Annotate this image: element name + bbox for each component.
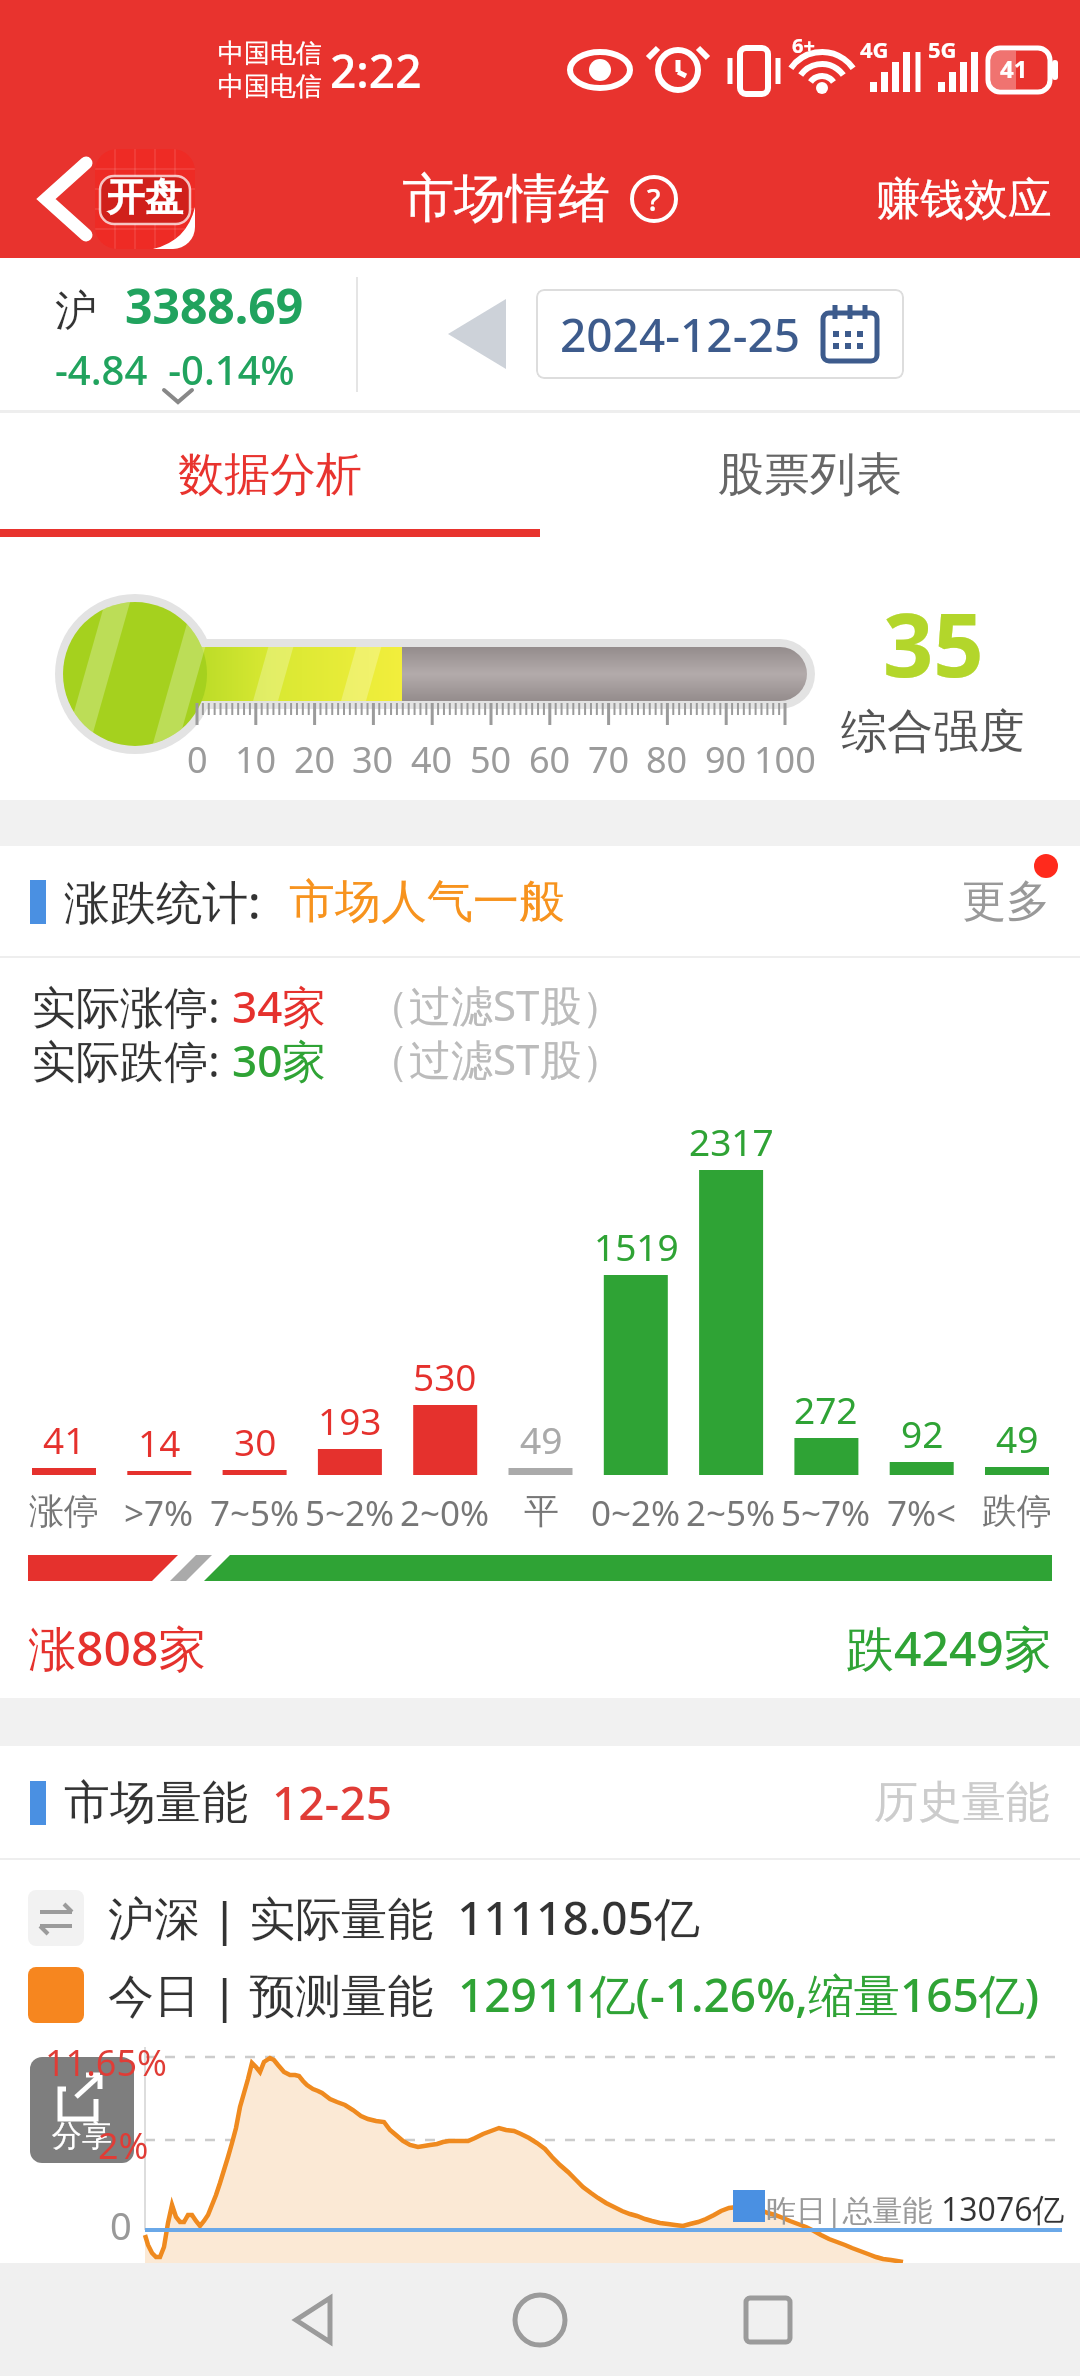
staticText: 34家 xyxy=(232,976,327,1030)
staticText: 平 xyxy=(524,1489,559,1533)
staticText: 实际跌停: xyxy=(32,1030,232,1084)
staticText: 35 xyxy=(883,583,984,703)
button[interactable] xyxy=(708,2280,828,2360)
button[interactable] xyxy=(252,2280,372,2360)
staticText: 沪深 | 实际量能 11118.05亿 xyxy=(108,1886,700,1949)
button[interactable]: 开盘 xyxy=(95,149,195,249)
staticText: （过滤ST股） xyxy=(367,976,624,1030)
staticText: 赚钱效应 xyxy=(876,172,1052,227)
staticText: 中国电信 xyxy=(218,37,322,70)
staticText: 跌停 xyxy=(982,1489,1052,1533)
staticText: 历史量能 xyxy=(874,1775,1050,1830)
staticText: -4.84 -0.14% xyxy=(55,342,295,396)
button[interactable] xyxy=(480,2280,600,2360)
staticText: 5G xyxy=(928,34,957,64)
staticText: 数据分析 xyxy=(178,446,362,504)
staticText: 5~7% xyxy=(781,1489,871,1537)
staticText: 1519 xyxy=(594,1221,679,1271)
button[interactable]: 股票列表 xyxy=(540,413,1080,537)
staticText: 实际涨停: xyxy=(32,976,232,1030)
button[interactable]: 赚钱效应 xyxy=(876,172,1052,227)
staticText: 12-25 xyxy=(272,1771,393,1834)
button[interactable]: 分享 xyxy=(30,2057,134,2163)
staticText: 股票列表 xyxy=(718,446,902,504)
button[interactable] xyxy=(448,299,506,369)
staticText: 市场情绪 xyxy=(402,166,610,232)
staticText: 2317 xyxy=(689,1116,774,1166)
staticText: 30 xyxy=(234,1416,277,1466)
staticText: 14 xyxy=(138,1417,181,1467)
staticText: 0 xyxy=(110,2199,132,2251)
staticText: （过滤ST股） xyxy=(367,1030,624,1084)
staticText: 综合强度 xyxy=(841,703,1025,761)
staticText: 今日 | 预测量能 xyxy=(108,1963,458,2026)
staticText: 11.65% xyxy=(45,2038,167,2087)
staticText: 100 xyxy=(754,735,816,784)
staticText: 涨停 xyxy=(29,1489,99,1533)
staticText: 更多 xyxy=(962,874,1050,929)
staticText: 30家 xyxy=(232,1030,327,1084)
staticText: 80 xyxy=(646,735,688,784)
staticText: 41 xyxy=(43,1414,86,1464)
button[interactable] xyxy=(34,157,98,241)
staticText: 昨日|总量能 xyxy=(766,2189,941,2230)
staticText: 2% xyxy=(98,2121,149,2170)
staticText: 沪 xyxy=(55,285,97,338)
staticText: 5~2% xyxy=(305,1489,395,1537)
staticText: 涨808家 xyxy=(28,1615,207,1681)
staticText: 3388.69 xyxy=(125,273,304,338)
staticText: 30 xyxy=(352,735,394,784)
staticText: 市场人气一般 xyxy=(289,873,565,931)
staticText: 7~5% xyxy=(210,1489,300,1537)
staticText: 92 xyxy=(901,1408,944,1458)
staticText: 开盘 xyxy=(107,173,183,221)
staticText: >7% xyxy=(124,1489,194,1537)
button[interactable]: 历史量能 xyxy=(874,1775,1050,1830)
staticText: 跌4249家 xyxy=(846,1615,1052,1681)
staticText: 49 xyxy=(520,1414,563,1464)
staticText: 41 xyxy=(1000,52,1028,85)
staticText: 市场量能 xyxy=(64,1774,248,1832)
button[interactable]: 沪 xyxy=(55,273,304,396)
staticText: 分享 xyxy=(52,2117,112,2155)
staticText: 90 xyxy=(705,735,747,784)
staticText: 40 xyxy=(411,735,453,784)
staticText: 2:22 xyxy=(330,39,422,102)
staticText: 193 xyxy=(318,1395,382,1445)
staticText: 0~2% xyxy=(591,1489,681,1537)
staticText: 4G xyxy=(860,34,889,64)
staticText: 涨跌统计: xyxy=(64,870,261,933)
button[interactable]: ? xyxy=(630,175,678,223)
button[interactable]: 更多 xyxy=(962,874,1050,929)
staticText: 6+ xyxy=(792,32,815,59)
staticText: 2~0% xyxy=(400,1489,490,1537)
staticText: 20 xyxy=(294,735,336,784)
staticText: 49 xyxy=(996,1413,1039,1463)
staticText: 530 xyxy=(413,1351,477,1401)
staticText: 70 xyxy=(588,735,630,784)
staticText: 60 xyxy=(529,735,571,784)
staticText: 13076亿 xyxy=(941,2187,1065,2231)
staticText: 50 xyxy=(470,735,512,784)
staticText: 中国电信 xyxy=(218,70,322,103)
staticText: 0 xyxy=(187,735,208,784)
staticText: 2~5% xyxy=(686,1489,776,1537)
staticText: 12911亿(-1.26%,缩量165亿) xyxy=(458,1963,1040,2026)
staticText: 2024-12-25 xyxy=(560,303,801,366)
staticText: 272 xyxy=(794,1384,858,1434)
button[interactable]: 2024-12-25 xyxy=(536,289,904,379)
button[interactable]: 数据分析 xyxy=(0,413,540,537)
staticText: 7%< xyxy=(887,1489,957,1537)
staticText: ? xyxy=(647,179,661,220)
staticText: 10 xyxy=(235,735,277,784)
